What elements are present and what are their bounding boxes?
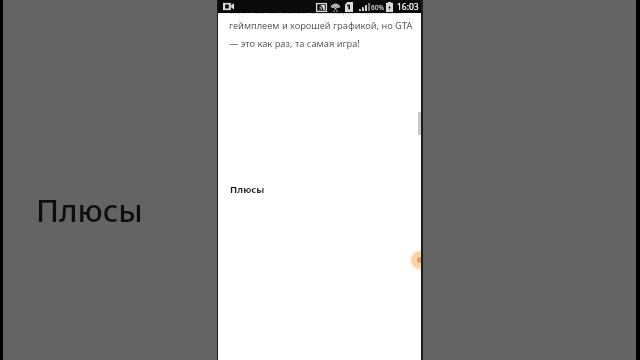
staticText: — это как раз, та самая игра! xyxy=(229,37,360,50)
staticText: Плюсы xyxy=(230,183,265,196)
staticText: 16:03 xyxy=(397,1,419,13)
button[interactable]: Article text xyxy=(218,13,421,360)
staticText: геймплеем и хорошей графикой, но GTA xyxy=(229,19,413,32)
staticText: 60% xyxy=(371,3,384,12)
button[interactable]: Scroll to top xyxy=(409,249,421,271)
staticText: отличается захватывающим сюжетом, xyxy=(229,13,403,17)
staticText: Плюсы xyxy=(36,189,143,231)
